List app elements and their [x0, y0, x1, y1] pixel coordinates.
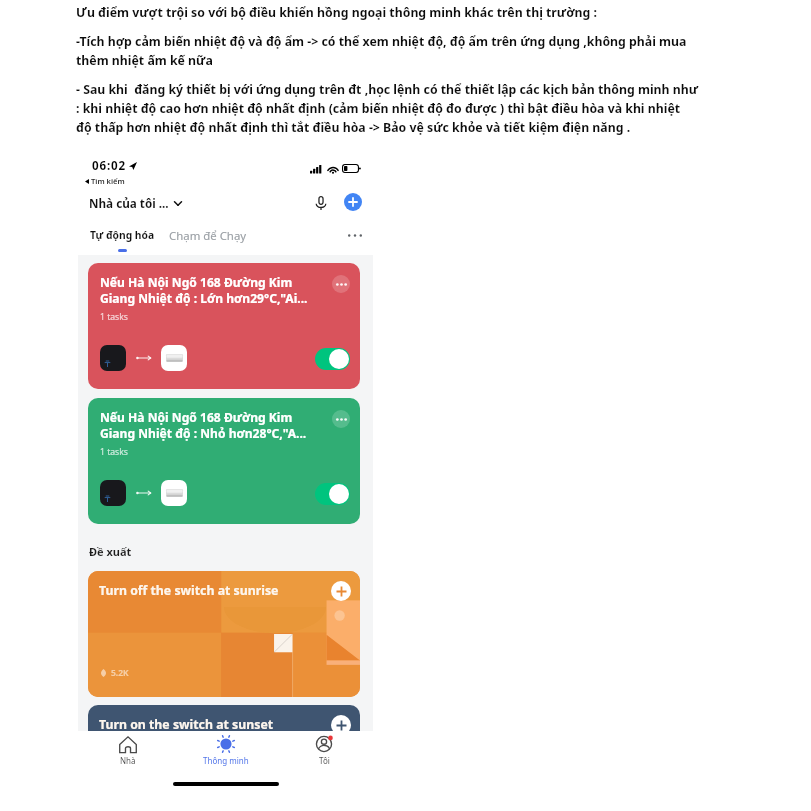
- button[interactable]: Add suggestion: [331, 715, 351, 731]
- staticText: Thông minh: [203, 755, 249, 766]
- button[interactable]: Card menu: [332, 410, 350, 428]
- staticText: 1 tasks: [100, 446, 128, 458]
- staticText: Turn on the switch at sunset: [99, 716, 274, 731]
- button[interactable]: Thông minh: [177, 735, 275, 766]
- button[interactable]: Nhà của tôi ...: [89, 195, 181, 211]
- staticText: - Sau khi đăng ký thiết bị với ứng dụng …: [76, 81, 699, 135]
- button[interactable]: Turn on the switch at sunset: [88, 705, 360, 731]
- button[interactable]: Enable automation: [315, 483, 350, 505]
- staticText: 1 tasks: [100, 311, 128, 323]
- staticText: Ưu điểm vượt trội so với bộ điều khiển h…: [76, 4, 597, 21]
- staticText: Nếu Hà Nội Ngõ 168 Đường Kim: [100, 274, 293, 290]
- staticText: Giang Nhiệt độ : Nhỏ hơn28°C,"A...: [100, 425, 307, 441]
- button[interactable]: Card menu: [332, 275, 350, 293]
- staticText: Nếu Hà Nội Ngõ 168 Đường Kim: [100, 409, 293, 425]
- button[interactable]: Voice assistant: [313, 194, 329, 212]
- staticText: Tìm kiếm: [91, 176, 125, 186]
- button[interactable]: Add suggestion: [331, 581, 351, 601]
- button[interactable]: Nếu Hà Nội Ngõ 168 Đường Kim: [88, 263, 360, 389]
- staticText: Đề xuất: [89, 544, 132, 559]
- staticText: 5.2K: [111, 667, 129, 679]
- staticText: Nhà của tôi ...: [89, 195, 169, 211]
- staticText: Tự động hóa: [90, 228, 155, 242]
- button[interactable]: More options: [345, 229, 365, 241]
- button[interactable]: Add device: [344, 193, 362, 211]
- staticText: -Tích hợp cảm biến nhiệt độ và độ ẩm -> …: [76, 33, 687, 68]
- staticText: Nhà: [120, 755, 136, 766]
- staticText: Giang Nhiệt độ : Lớn hơn29°C,"Ai...: [100, 290, 308, 306]
- staticText: Tôi: [319, 755, 330, 766]
- button[interactable]: Enable automation: [315, 348, 350, 370]
- button[interactable]: Nhà: [78, 735, 177, 766]
- staticText: Turn off the switch at sunrise: [99, 582, 279, 599]
- button[interactable]: Tôi: [275, 735, 373, 766]
- button[interactable]: Tự động hóa: [90, 228, 155, 252]
- button[interactable]: Nếu Hà Nội Ngõ 168 Đường Kim: [88, 398, 360, 524]
- button[interactable]: Chạm để Chạy: [169, 228, 247, 244]
- button[interactable]: 5.2K: [88, 571, 360, 697]
- staticText: 06:02: [92, 158, 127, 174]
